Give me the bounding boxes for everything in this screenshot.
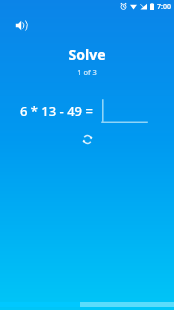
staticText: Solve bbox=[0, 45, 174, 64]
staticText: 1 of 3 bbox=[0, 67, 174, 77]
staticText: 6 * 13 - 49 = bbox=[20, 102, 93, 120]
staticText: 7:00 bbox=[157, 2, 171, 12]
button[interactable]: Answer field bbox=[102, 99, 147, 123]
button[interactable]: Refresh question bbox=[77, 129, 97, 149]
button[interactable]: Sound bbox=[10, 14, 32, 36]
